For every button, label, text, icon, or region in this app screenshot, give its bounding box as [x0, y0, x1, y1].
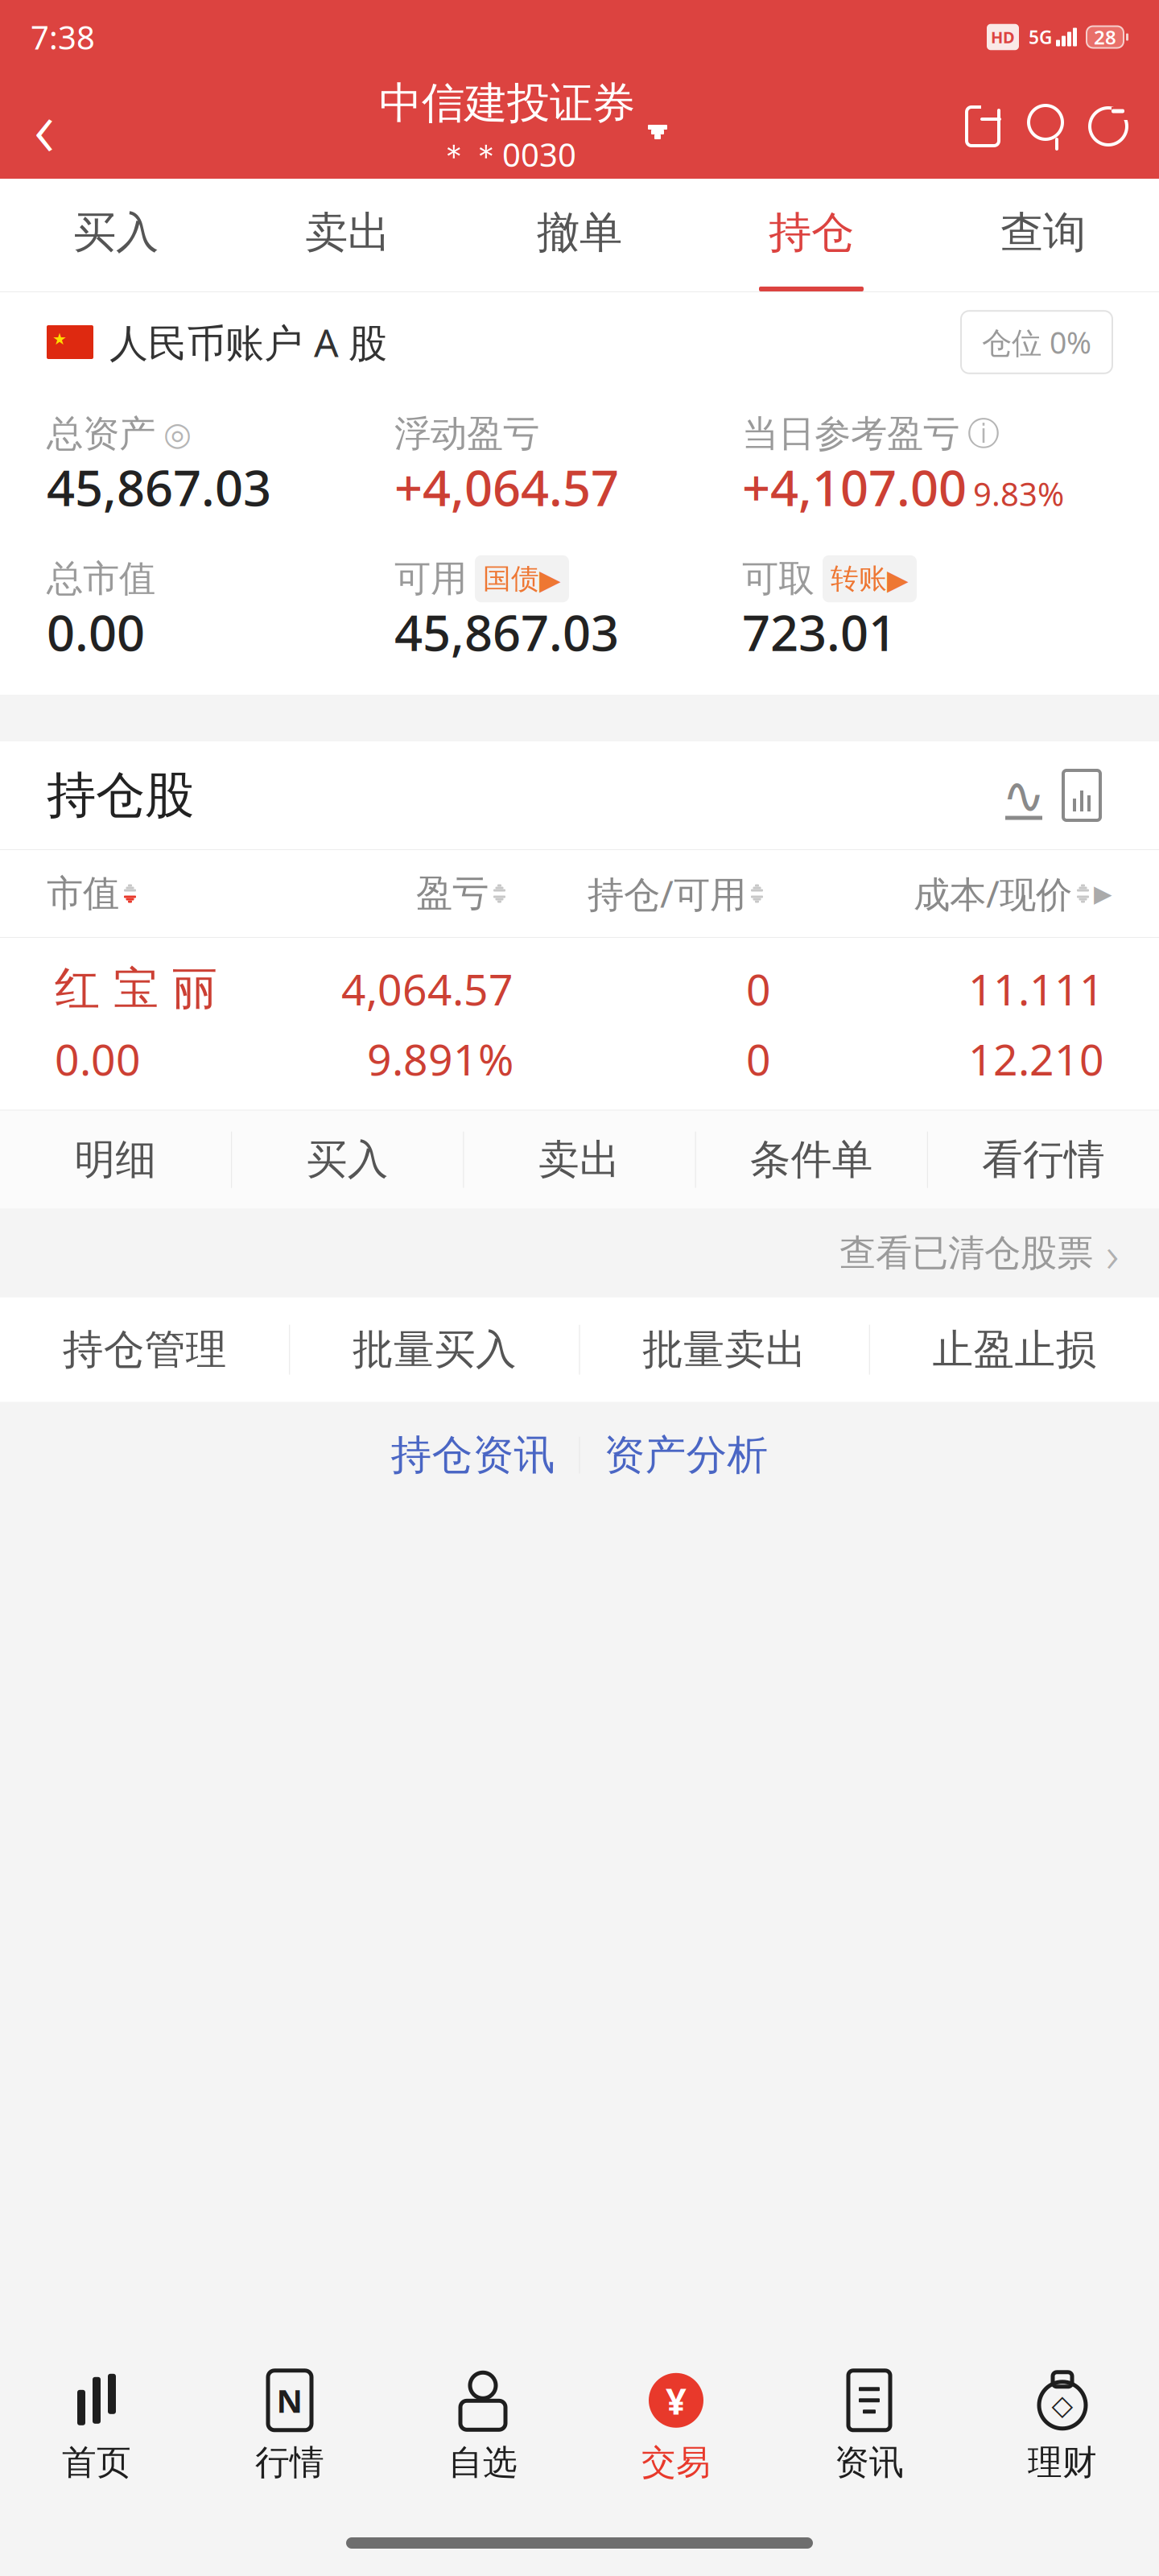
staticText: 28: [1094, 24, 1116, 50]
staticText: 9.891%: [367, 1030, 514, 1087]
button[interactable]: 撤单: [464, 179, 695, 291]
staticText: 总市值: [47, 556, 155, 601]
button[interactable]: Trend chart: [996, 767, 1051, 824]
button[interactable]: 仓位 0%: [961, 311, 1112, 373]
staticText: HD: [991, 26, 1015, 48]
staticText: +4,064.57: [394, 454, 619, 520]
staticText: 明细: [75, 1135, 157, 1185]
button[interactable]: 批量买入: [290, 1297, 579, 1402]
staticText: 仓位 0%: [982, 322, 1091, 362]
button[interactable]: 条件单: [696, 1111, 927, 1209]
staticText: 批量买入: [352, 1325, 517, 1375]
staticText: ＊＊0030: [438, 133, 576, 176]
staticText: 看行情: [982, 1135, 1105, 1185]
staticText: 转账▶: [831, 562, 909, 596]
staticText: 总资产: [47, 412, 155, 456]
button[interactable]: ◇: [966, 2357, 1159, 2495]
button[interactable]: 首页: [0, 2357, 193, 2495]
staticText: 行情: [255, 2441, 324, 2484]
staticText: 卖出: [538, 1135, 621, 1185]
staticText: 红 宝 丽: [55, 961, 217, 1017]
staticText: 成本/现价: [914, 869, 1072, 918]
button[interactable]: 持仓: [695, 179, 927, 291]
button[interactable]: Refresh: [1083, 100, 1133, 153]
staticText: ‹: [34, 74, 55, 179]
button[interactable]: 盈亏: [304, 850, 505, 937]
staticText: ▶: [1094, 880, 1112, 907]
button[interactable]: 持仓管理: [0, 1297, 289, 1402]
staticText: 中信建投证券: [379, 77, 635, 130]
button[interactable]: Share: [958, 100, 1008, 153]
staticText: 0: [746, 960, 771, 1017]
staticText: 资讯: [835, 2441, 904, 2484]
staticText: 7:38: [31, 16, 95, 58]
button[interactable]: 资产分析: [580, 1411, 792, 1499]
button[interactable]: 资讯: [773, 2357, 966, 2495]
staticText: 4,064.57: [341, 960, 514, 1017]
button[interactable]: ¥: [579, 2357, 773, 2495]
button[interactable]: ★: [47, 316, 387, 368]
button[interactable]: 批量卖出: [580, 1297, 869, 1402]
staticText: 0.00: [55, 1030, 141, 1087]
staticText: ›: [1106, 1220, 1119, 1286]
staticText: 11.111: [968, 960, 1104, 1017]
staticText: 批量卖出: [642, 1325, 807, 1375]
staticText: 0: [746, 1030, 771, 1087]
button[interactable]: Back: [0, 74, 89, 179]
staticText: 自选: [448, 2441, 518, 2484]
button[interactable]: 红 宝 丽: [16, 938, 1143, 1110]
button[interactable]: 持仓资讯: [367, 1411, 579, 1499]
staticText: 持仓: [769, 206, 854, 259]
staticText: ◇: [1052, 2389, 1073, 2421]
staticText: 可取: [742, 556, 815, 601]
button[interactable]: 查看已清仓股票: [839, 1209, 1159, 1297]
staticText: 交易: [641, 2441, 711, 2484]
staticText: 持仓资讯: [391, 1430, 555, 1480]
button[interactable]: 查询: [927, 179, 1159, 291]
staticText: 卖出: [305, 206, 390, 259]
button[interactable]: 止盈止损: [870, 1297, 1159, 1402]
staticText: 资产分析: [604, 1430, 768, 1480]
button[interactable]: 中信建投证券: [379, 77, 667, 176]
button[interactable]: Search: [1021, 100, 1070, 153]
staticText: 盈亏: [416, 871, 489, 916]
staticText: ⓘ: [967, 414, 1000, 454]
staticText: 首页: [62, 2441, 131, 2484]
button[interactable]: N: [193, 2357, 386, 2495]
staticText: ★: [52, 330, 67, 348]
staticText: 45,867.03: [47, 454, 271, 520]
button[interactable]: 买入: [232, 1111, 463, 1209]
staticText: 9.83%: [973, 472, 1064, 515]
button[interactable]: 卖出: [464, 1111, 695, 1209]
button[interactable]: Bar chart: [1051, 767, 1112, 824]
button[interactable]: 持仓/可用: [505, 850, 763, 937]
button[interactable]: 看行情: [928, 1111, 1159, 1209]
staticText: 持仓管理: [62, 1325, 227, 1375]
staticText: 723.01: [742, 599, 897, 665]
staticText: 0.00: [47, 599, 145, 665]
staticText: 买入: [73, 206, 159, 259]
button[interactable]: 卖出: [232, 179, 464, 291]
staticText: 当日参考盈亏: [742, 412, 959, 456]
staticText: 止盈止损: [932, 1325, 1097, 1375]
staticText: 市值: [47, 871, 119, 916]
staticText: 浮动盈亏: [394, 412, 539, 456]
staticText: ◎: [163, 416, 192, 452]
button[interactable]: 市值: [47, 850, 304, 937]
staticText: 持仓股: [47, 765, 194, 826]
staticText: 查看已清仓股票: [839, 1231, 1093, 1276]
staticText: ∿: [1002, 766, 1046, 825]
staticText: 5G: [1029, 25, 1052, 49]
staticText: 查询: [1000, 206, 1086, 259]
button[interactable]: 买入: [0, 179, 232, 291]
button[interactable]: 自选: [386, 2357, 579, 2495]
staticText: +4,107.00: [742, 454, 967, 520]
button[interactable]: 明细: [0, 1111, 231, 1209]
staticText: 买入: [306, 1135, 389, 1185]
staticText: 12.210: [968, 1030, 1104, 1087]
button[interactable]: 成本/现价: [763, 850, 1112, 937]
staticText: 国债▶: [483, 562, 561, 596]
staticText: 条件单: [750, 1135, 873, 1185]
staticText: 理财: [1028, 2441, 1097, 2484]
staticText: 撤单: [537, 206, 622, 259]
